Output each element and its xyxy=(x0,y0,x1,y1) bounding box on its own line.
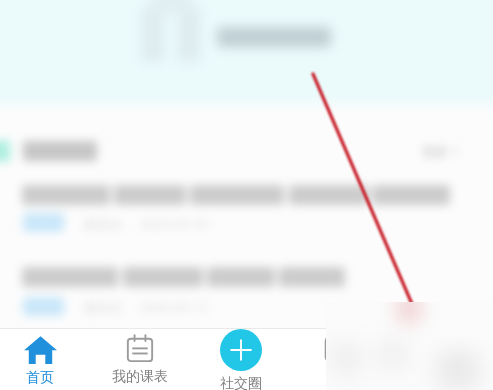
button[interactable]: 我的 xyxy=(391,329,491,390)
other: 社交圈 xyxy=(220,329,262,371)
button[interactable]: 我的课表 xyxy=(90,329,190,390)
other: 首页 xyxy=(24,333,57,366)
staticText: 更多 > xyxy=(422,142,459,160)
button[interactable]: 发现 xyxy=(291,329,391,390)
button[interactable]: 首页 xyxy=(0,329,90,390)
staticText: 我的 xyxy=(427,368,455,386)
staticText: 首页 xyxy=(26,369,54,387)
staticText: 社交圈 xyxy=(220,375,262,390)
other: 我的课表 xyxy=(124,333,156,365)
button[interactable]: 社交圈 xyxy=(191,329,291,390)
other: 发现 xyxy=(325,333,357,365)
other: 我的 xyxy=(425,333,457,365)
staticText: 我的课表 xyxy=(112,368,168,386)
